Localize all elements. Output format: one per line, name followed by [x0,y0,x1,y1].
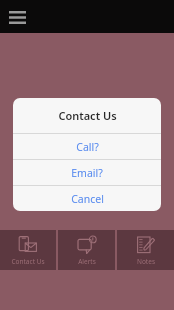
button[interactable]: Cancel [13,186,161,211]
button[interactable]: Alerts [58,230,115,270]
staticText: Contact Us [11,257,45,266]
button[interactable]: Contact Us [0,230,56,270]
button[interactable]: Call? [13,134,161,159]
staticText: Contact Us [58,108,117,123]
staticText: Notes [137,257,155,266]
staticText: Email? [71,166,103,180]
staticText: Cancel [71,192,104,206]
button[interactable]: Email? [13,160,161,185]
button[interactable]: Notes [117,230,174,270]
staticText: Alerts [78,257,96,266]
button[interactable]: Menu [7,8,27,26]
staticText: Call? [76,140,99,154]
